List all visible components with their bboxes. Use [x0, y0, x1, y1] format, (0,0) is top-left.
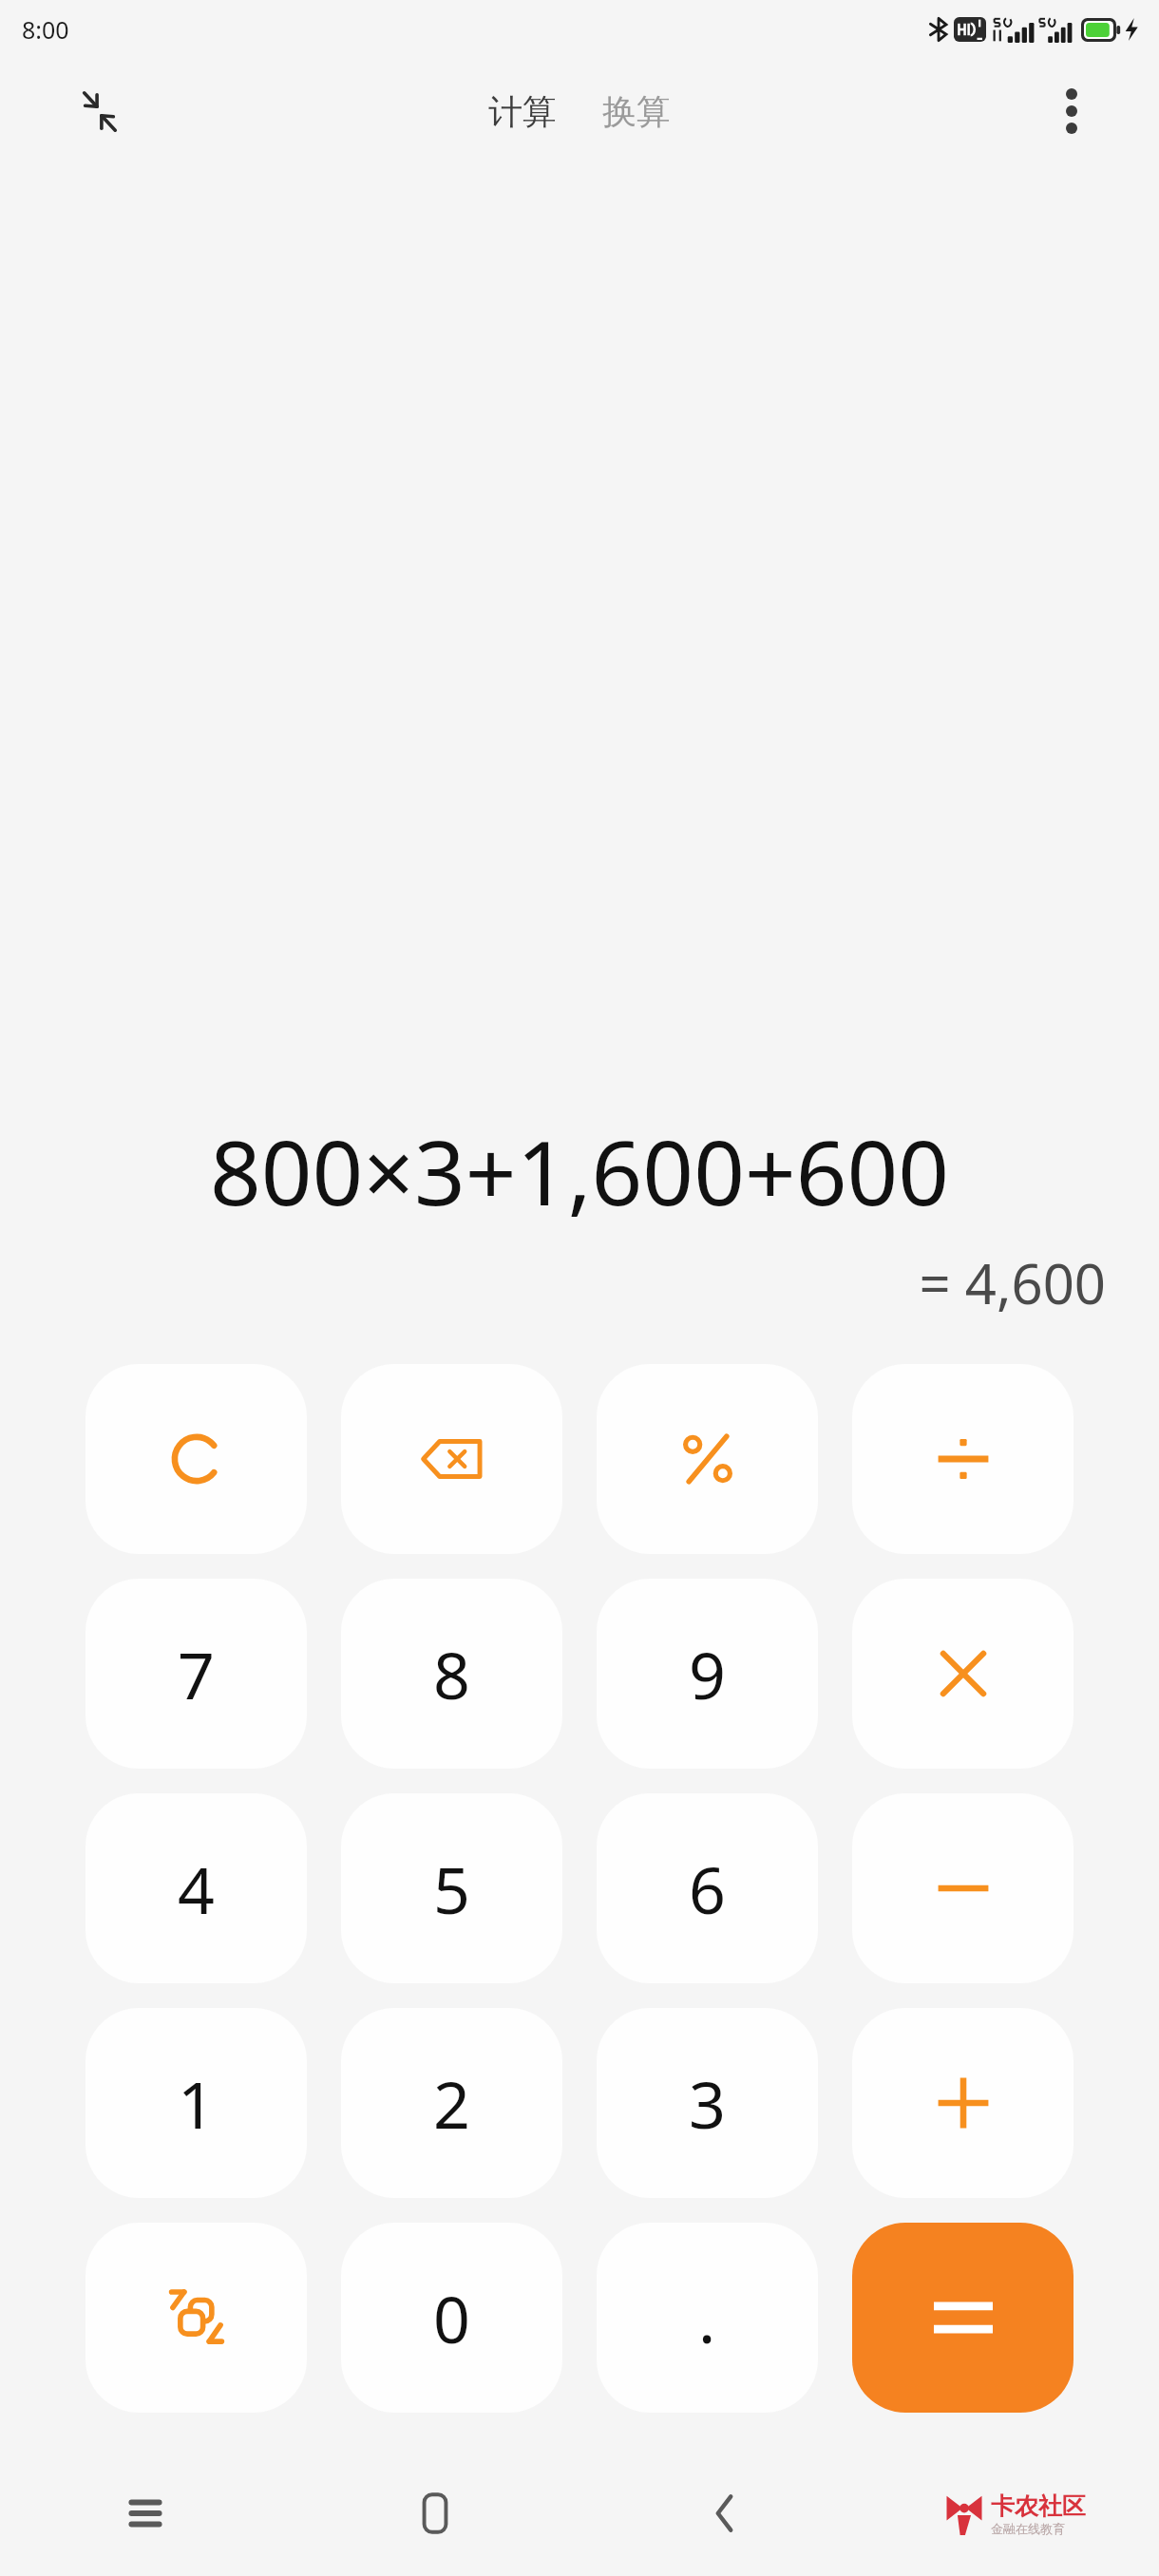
button[interactable]: 7	[85, 1579, 307, 1769]
button[interactable]: Home	[290, 2451, 579, 2576]
button[interactable]: Scientific	[85, 2223, 307, 2413]
button[interactable]: Collapse	[65, 77, 133, 145]
button[interactable]: 0	[341, 2223, 562, 2413]
button[interactable]: 换算	[593, 85, 680, 139]
button[interactable]: Minus	[852, 1793, 1073, 1983]
staticText: 2	[433, 2059, 470, 2148]
staticText: 6	[689, 1845, 726, 1933]
button[interactable]: Recents	[0, 2451, 290, 2576]
button[interactable]: 3	[597, 2008, 818, 2198]
staticText: 800×3+1,600+600	[53, 1110, 1106, 1232]
staticText: 3	[689, 2059, 726, 2148]
button[interactable]: Clear	[85, 1364, 307, 1554]
staticText: 计算	[488, 90, 557, 133]
button[interactable]: Multiply	[852, 1579, 1073, 1769]
staticText: 9	[689, 1630, 726, 1718]
button[interactable]: .	[597, 2223, 818, 2413]
button[interactable]: 2	[341, 2008, 562, 2198]
staticText: 8:00	[22, 13, 69, 46]
staticText: 4	[178, 1845, 215, 1933]
button[interactable]: 8	[341, 1579, 562, 1769]
button[interactable]: 9	[597, 1579, 818, 1769]
button[interactable]: 6	[597, 1793, 818, 1983]
button[interactable]: Divide	[852, 1364, 1073, 1554]
staticText: 卡农社区	[991, 2491, 1086, 2521]
staticText: 换算	[602, 90, 671, 133]
button[interactable]: Backspace	[341, 1364, 562, 1554]
button[interactable]: Percent	[597, 1364, 818, 1554]
staticText: 8	[433, 1630, 470, 1718]
staticText: .	[698, 2274, 716, 2362]
staticText: 7	[178, 1630, 215, 1718]
staticText: 金融在线教育	[991, 2521, 1065, 2536]
button[interactable]: Equals	[852, 2223, 1073, 2413]
staticText: 5	[433, 1845, 470, 1933]
button[interactable]: Plus	[852, 2008, 1073, 2198]
button[interactable]: Back	[579, 2451, 869, 2576]
button[interactable]: 4	[85, 1793, 307, 1983]
staticText: = 4,600	[53, 1245, 1106, 1320]
button[interactable]: 5	[341, 1793, 562, 1983]
button[interactable]: More options	[1037, 77, 1106, 145]
button[interactable]: 计算	[479, 85, 566, 139]
staticText: 0	[433, 2274, 470, 2362]
staticText: 1	[178, 2059, 215, 2148]
button[interactable]: 1	[85, 2008, 307, 2198]
